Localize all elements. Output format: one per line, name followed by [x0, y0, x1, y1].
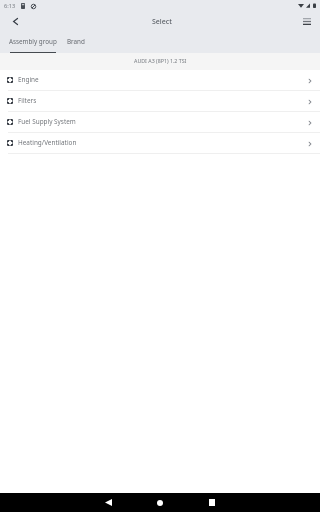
button[interactable]: Assembly group [4, 32, 62, 53]
staticText: Fuel Supply System [18, 117, 76, 126]
staticText: Engine [18, 75, 39, 84]
button[interactable]: Recents [186, 493, 238, 512]
button[interactable]: Back [0, 11, 31, 32]
staticText: Assembly group [9, 37, 57, 46]
button[interactable]: Menu [294, 11, 320, 32]
staticText: Brand [67, 37, 85, 46]
button[interactable]: Brand [62, 32, 90, 53]
button[interactable]: Back [82, 493, 134, 512]
staticText: Select [152, 17, 172, 27]
button[interactable]: Engine [0, 70, 320, 91]
staticText: Heating/Ventilation [18, 138, 77, 147]
button[interactable]: Heating/Ventilation [0, 133, 320, 154]
button[interactable]: Fuel Supply System [0, 112, 320, 133]
button[interactable]: Filters [0, 91, 320, 112]
staticText: 6:13 [4, 2, 16, 10]
staticText: Filters [18, 96, 37, 105]
button[interactable]: Home [134, 493, 186, 512]
staticText: AUDI A3 (8P1) 1.2 TSI [134, 57, 187, 64]
